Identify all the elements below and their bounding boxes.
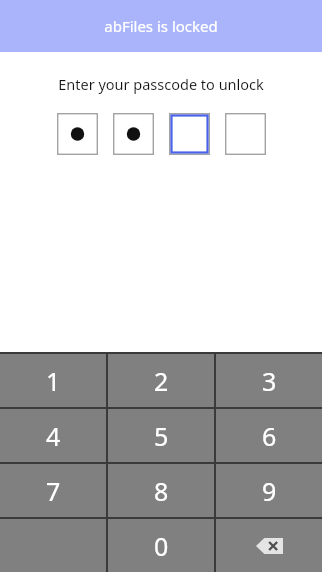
staticText: abFiles is locked — [104, 16, 218, 36]
staticText: 5 — [154, 419, 169, 453]
staticText: 0 — [154, 529, 169, 563]
staticText: 8 — [154, 474, 169, 508]
button[interactable]: Backspace — [216, 519, 322, 572]
button[interactable]: 8 — [108, 464, 214, 517]
staticText: 6 — [262, 419, 277, 453]
staticText: 4 — [46, 419, 61, 453]
button[interactable]: 6 — [216, 409, 322, 462]
staticText: 1 — [46, 364, 61, 398]
button[interactable]: 4 — [0, 409, 106, 462]
button[interactable]: 7 — [0, 464, 106, 517]
staticText: 2 — [154, 364, 169, 398]
staticText: 3 — [262, 364, 277, 398]
staticText: Enter your passcode to unlock — [58, 74, 264, 94]
button[interactable]: 3 — [216, 354, 322, 407]
staticText: 7 — [46, 474, 61, 508]
button[interactable]: 0 — [108, 519, 214, 572]
button[interactable]: 2 — [108, 354, 214, 407]
button[interactable]: 9 — [216, 464, 322, 517]
button[interactable]: 5 — [108, 409, 214, 462]
button[interactable]: 1 — [0, 354, 106, 407]
staticText: 9 — [262, 474, 277, 508]
